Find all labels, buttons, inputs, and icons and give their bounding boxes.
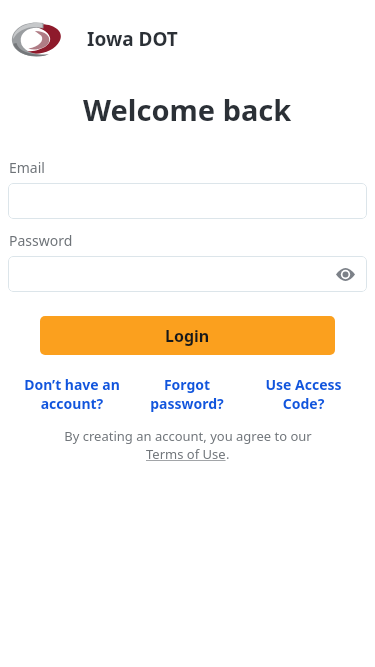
staticText: Don’t have an account?: [24, 375, 120, 413]
staticText: By creating an account, you agree to our: [64, 427, 312, 445]
button[interactable]: Show password: [8, 256, 367, 292]
button[interactable]: Terms of Use: [146, 445, 226, 463]
staticText: .: [226, 445, 230, 463]
button[interactable]: Forgot password?: [129, 375, 245, 413]
staticText: Email: [9, 158, 45, 177]
staticText: Use Access Code?: [265, 375, 342, 413]
staticText: Welcome back: [83, 90, 292, 129]
staticText: Login: [165, 325, 210, 347]
staticText: Iowa DOT: [87, 26, 178, 52]
button[interactable]: Login: [40, 316, 335, 355]
staticText: Forgot password?: [150, 375, 224, 413]
staticText: Terms of Use: [146, 445, 226, 463]
button[interactable]: Don’t have an account?: [14, 375, 129, 413]
staticText: Password: [9, 231, 73, 250]
button[interactable]: Use Access Code?: [245, 375, 361, 413]
button[interactable]: Show password: [333, 262, 357, 286]
button[interactable]: [8, 183, 367, 219]
